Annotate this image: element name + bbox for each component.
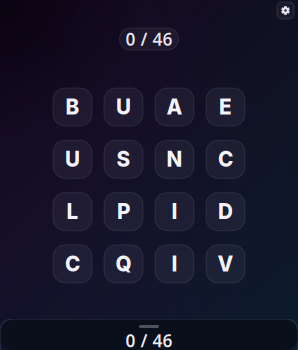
staticText: 0 / 46 [125,27,172,50]
button[interactable]: C [53,245,92,283]
staticText: Q [115,251,131,276]
button[interactable]: D [206,193,245,231]
staticText: U [116,94,131,119]
button[interactable]: L [53,193,92,231]
button[interactable]: Q [104,245,143,283]
button[interactable]: S [104,140,143,178]
staticText: P [117,199,130,224]
button[interactable]: A [155,88,194,126]
button[interactable]: I [155,193,194,231]
staticText: N [166,147,182,172]
button[interactable]: N [155,140,194,178]
button[interactable]: I [155,245,194,283]
button[interactable]: C [206,140,245,178]
staticText: C [218,147,233,172]
staticText: U [65,147,80,172]
staticText: L [66,199,78,224]
button[interactable]: E [206,88,245,126]
staticText: I [171,251,177,276]
staticText: 0 / 46 [125,329,172,350]
staticText: S [116,147,130,172]
staticText: D [218,199,233,224]
button[interactable]: B [53,88,92,126]
staticText: C [65,251,80,276]
staticText: V [217,251,233,276]
staticText: A [166,94,182,119]
staticText: B [65,94,79,119]
staticText: I [171,199,177,224]
staticText: E [219,94,232,119]
button[interactable]: V [206,245,245,283]
button[interactable]: U [53,140,92,178]
button[interactable]: U [104,88,143,126]
button[interactable]: Settings [277,2,294,19]
button[interactable]: P [104,193,143,231]
